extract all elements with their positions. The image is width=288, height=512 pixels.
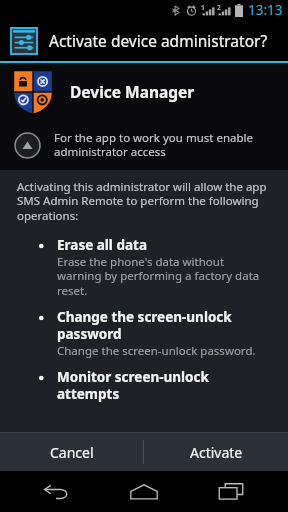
staticText: Change the screen-unlock password. [57, 343, 256, 359]
other: Collapse [14, 132, 41, 159]
button[interactable]: Monitor screen-unlock attempts [0, 368, 288, 403]
staticText: 2 [217, 3, 221, 12]
button[interactable]: Erase all data [0, 236, 288, 299]
button[interactable]: Activate [144, 433, 288, 471]
staticText: Monitor screen-unlock attempts [57, 368, 270, 403]
staticText: Change the screen-unlock password [57, 308, 270, 343]
button[interactable]: Back [27, 471, 87, 512]
staticText: 1 [201, 3, 205, 12]
button[interactable]: Cancel [0, 433, 143, 471]
staticText: Erase all data [57, 236, 147, 254]
button[interactable]: Recent apps [201, 471, 261, 512]
staticText: Activate [190, 443, 243, 462]
staticText: Activate device administrator? [49, 30, 268, 51]
staticText: 13:13 [248, 1, 283, 19]
staticText: Erase the phone's data without warning b… [57, 254, 270, 299]
other: Settings [11, 28, 37, 54]
button[interactable]: Collapse [0, 120, 288, 170]
staticText: For the app to work you must enable admi… [54, 130, 272, 160]
staticText: Device Manager [70, 81, 195, 102]
staticText: Activating this administrator will allow… [17, 179, 272, 224]
button[interactable]: Home [114, 471, 174, 512]
staticText: Cancel [50, 443, 94, 462]
button[interactable]: Change the screen-unlock password [0, 308, 288, 359]
